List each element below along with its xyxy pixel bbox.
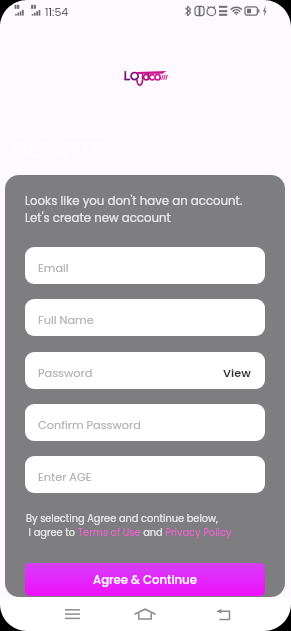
staticText: Full Name xyxy=(38,312,94,328)
button[interactable]: By selecting Agree and continue below, I… xyxy=(26,512,268,540)
button[interactable]: Home xyxy=(123,597,167,631)
button[interactable]: View password xyxy=(223,365,251,381)
button[interactable]: Back xyxy=(201,597,245,631)
staticText: Looks like you don't have an account. Le… xyxy=(25,193,243,226)
button[interactable]: Enter AGE xyxy=(25,456,265,493)
staticText: Email xyxy=(38,260,69,276)
staticText: View xyxy=(223,365,251,381)
button[interactable]: Recent apps xyxy=(50,597,94,631)
staticText: Enter AGE xyxy=(38,469,92,485)
button[interactable]: Email xyxy=(25,247,265,284)
staticText: Agree & Continue xyxy=(93,572,197,588)
staticText: Password xyxy=(38,365,93,381)
staticText: Confirm Password xyxy=(38,417,141,433)
button[interactable]: Password xyxy=(25,352,265,389)
button[interactable]: Agree & Continue xyxy=(25,563,265,596)
button[interactable]: Confirm Password xyxy=(25,404,265,441)
staticText: 11:54 xyxy=(45,4,69,19)
button[interactable]: Full Name xyxy=(25,299,265,336)
